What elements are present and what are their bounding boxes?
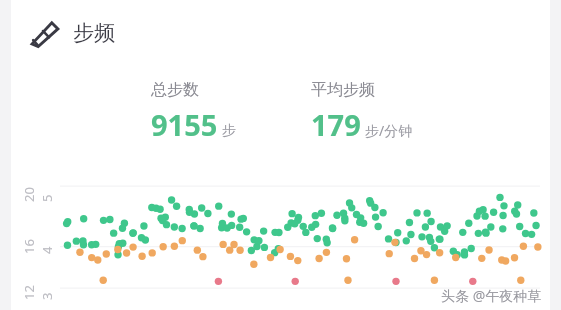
staticText: 164	[20, 234, 52, 254]
staticText: 步频	[73, 20, 115, 46]
staticText: 步	[222, 122, 236, 140]
button[interactable]: 总步数	[151, 80, 236, 144]
button[interactable]: 平均步频	[311, 80, 413, 144]
staticText: 平均步频	[311, 80, 375, 100]
staticText: 123	[20, 280, 52, 300]
staticText: 9155	[151, 105, 218, 144]
staticText: 步/分钟	[365, 121, 413, 140]
staticText: 179	[311, 105, 361, 144]
button[interactable]: Cadence	[28, 16, 115, 50]
other: Cadence	[28, 16, 62, 50]
staticText: 205	[20, 182, 52, 202]
staticText: 头条 @午夜种草	[441, 286, 542, 305]
staticText: 总步数	[151, 80, 199, 100]
